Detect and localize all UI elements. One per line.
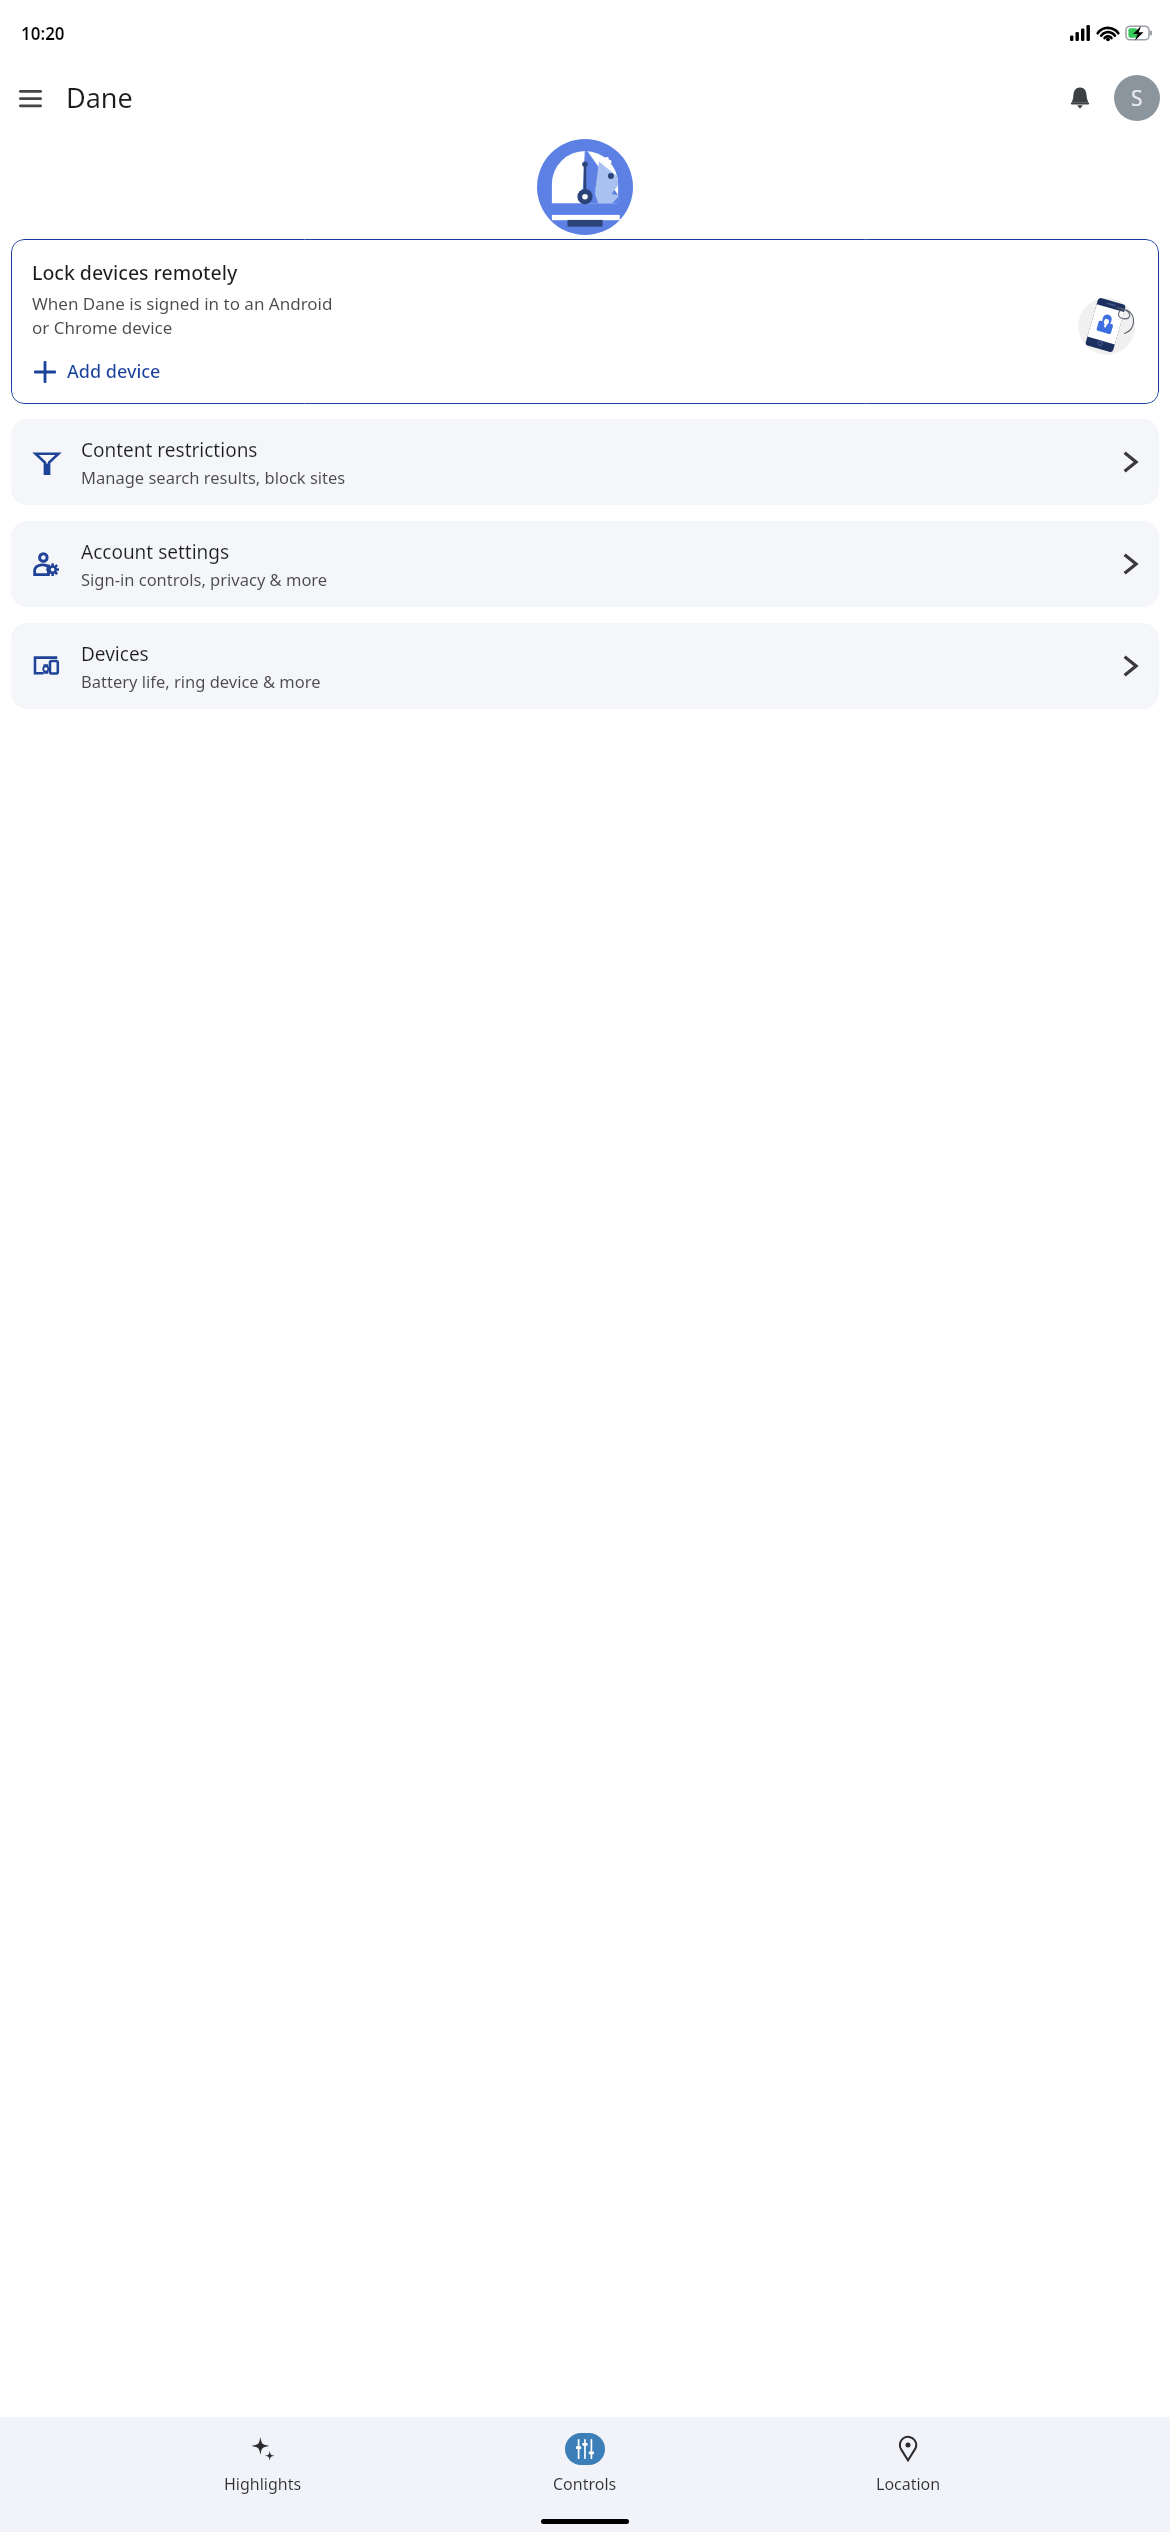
- staticText: Location: [876, 2473, 941, 2495]
- staticText: Battery life, ring device & more: [81, 670, 321, 692]
- button[interactable]: Lock devices remotely: [11, 239, 1159, 404]
- staticText: Manage search results, block sites: [81, 466, 346, 488]
- staticText: Devices: [81, 641, 149, 667]
- button[interactable]: Menu: [6, 74, 54, 122]
- staticText: When Dane is signed in to an Android or …: [32, 292, 333, 339]
- staticText: Lock devices remotely: [32, 259, 238, 286]
- button[interactable]: Add device: [32, 355, 163, 388]
- button[interactable]: Notifications: [1056, 74, 1104, 122]
- button[interactable]: Controls: [525, 2433, 645, 2495]
- button[interactable]: Location: [848, 2433, 968, 2495]
- staticText: Content restrictions: [81, 437, 258, 463]
- staticText: Account settings: [81, 539, 230, 565]
- staticText: Add device: [67, 359, 161, 384]
- button[interactable]: Content restrictions: [11, 419, 1159, 505]
- staticText: 10:20: [21, 22, 65, 45]
- staticText: Dane: [66, 79, 133, 116]
- staticText: Sign-in controls, privacy & more: [81, 568, 328, 590]
- button[interactable]: Highlights: [203, 2433, 323, 2495]
- staticText: Highlights: [224, 2473, 302, 2495]
- staticText: Controls: [553, 2473, 617, 2495]
- button[interactable]: Account: [1114, 75, 1160, 121]
- button[interactable]: Devices: [11, 623, 1159, 709]
- button[interactable]: Account settings: [11, 521, 1159, 607]
- staticText: S: [1131, 84, 1143, 113]
